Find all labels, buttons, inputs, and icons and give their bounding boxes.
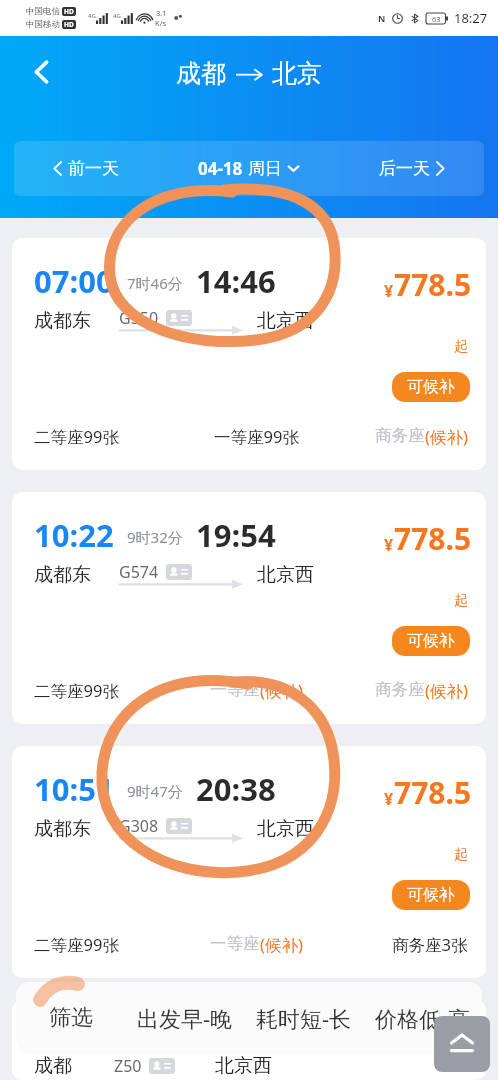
staticText: 9时47分 <box>127 781 183 801</box>
staticText: 成都东 <box>34 309 91 333</box>
staticText: ¥ <box>384 280 394 302</box>
staticText: 北京西 <box>257 817 314 841</box>
staticText: ¥ <box>384 788 394 810</box>
button[interactable]: 可候补 <box>392 626 470 656</box>
staticText: (候补) <box>425 679 468 702</box>
staticText: (候补) <box>260 679 303 702</box>
staticText: 3.1 <box>156 8 167 18</box>
staticText: 07:00 <box>34 260 114 302</box>
staticText: 商务座3张 <box>392 933 468 956</box>
staticText: G574 <box>119 561 159 583</box>
button[interactable]: 耗时短-长 <box>244 1003 363 1033</box>
staticText: 后一天 <box>379 158 430 179</box>
staticText: HD <box>64 20 74 29</box>
staticText: 中国电信 <box>26 6 60 17</box>
button[interactable]: 可候补 <box>392 880 470 910</box>
staticText: Z50 <box>114 1055 142 1077</box>
staticText: 北京西 <box>215 1054 272 1078</box>
staticText: K/s <box>155 18 167 28</box>
staticText: 19:54 <box>196 514 276 556</box>
staticText: 18:27 <box>454 9 488 27</box>
staticText: 778.5 <box>394 772 472 813</box>
staticText: 起 <box>454 592 468 610</box>
staticText: 可候补 <box>407 885 455 905</box>
staticText: 出发早-晚 <box>137 1003 233 1033</box>
staticText: 二等座99张 <box>34 425 119 448</box>
staticText: 起 <box>454 338 468 356</box>
staticText: 起 <box>454 846 468 864</box>
staticText: 04-18 <box>198 157 243 180</box>
staticText: 价格低-高 <box>375 1003 471 1033</box>
staticText: 可候补 <box>407 631 455 651</box>
staticText: 10:51 <box>34 768 114 810</box>
button[interactable]: 出发早-晚 <box>125 1003 244 1033</box>
staticText: (候补) <box>260 933 303 956</box>
staticText: 9时32分 <box>127 527 183 547</box>
button[interactable]: 成都 <box>12 1000 486 1080</box>
staticText: 成都 <box>34 1054 72 1078</box>
button[interactable]: 前一天 <box>14 158 158 179</box>
staticText: G308 <box>119 815 159 837</box>
staticText: ¥ <box>384 534 394 556</box>
staticText: 成都东 <box>34 563 91 587</box>
staticText: G350 <box>119 307 159 329</box>
staticText: 前一天 <box>68 158 119 179</box>
staticText: 778.5 <box>394 518 472 559</box>
staticText: 北京西 <box>257 309 314 333</box>
button[interactable]: Scroll to top <box>434 1016 490 1072</box>
button[interactable]: 可候补 <box>392 372 470 402</box>
button[interactable]: Back <box>14 44 70 100</box>
staticText: 10:22 <box>34 514 114 556</box>
staticText: 成都 <box>176 58 226 89</box>
button[interactable]: 07:00 <box>12 238 486 470</box>
staticText: 商务座 <box>375 425 425 446</box>
staticText: 4G <box>88 12 96 20</box>
button[interactable]: 10:51 <box>12 746 486 978</box>
staticText: 778.5 <box>394 264 472 305</box>
staticText: HD <box>64 7 74 16</box>
staticText: (候补) <box>425 425 468 448</box>
button[interactable]: 筛选 <box>16 1004 125 1032</box>
button[interactable]: 10:22 <box>12 492 486 724</box>
staticText: 二等座99张 <box>34 679 119 702</box>
staticText: N <box>378 12 386 24</box>
button[interactable]: 后一天 <box>339 158 484 179</box>
staticText: 63 <box>432 14 441 24</box>
staticText: 北京 <box>272 58 322 89</box>
staticText: 周日 <box>248 158 282 179</box>
staticText: 4G <box>113 12 121 20</box>
staticText: 成都东 <box>34 817 91 841</box>
button[interactable]: 04-18 <box>158 157 339 180</box>
staticText: 中国移动 <box>26 19 60 30</box>
button[interactable]: 价格低-高 <box>363 1003 482 1033</box>
staticText: 耗时短-长 <box>256 1003 352 1033</box>
staticText: 二等座99张 <box>34 933 119 956</box>
staticText: 14:46 <box>196 260 276 302</box>
staticText: 一等座 <box>210 933 260 954</box>
staticText: 可候补 <box>407 377 455 397</box>
staticText: 7时46分 <box>127 273 183 293</box>
staticText: 商务座 <box>375 679 425 700</box>
staticText: 北京西 <box>257 563 314 587</box>
staticText: 一等座99张 <box>214 425 299 448</box>
staticText: 一等座 <box>210 679 260 700</box>
staticText: 20:38 <box>196 768 276 810</box>
staticText: 筛选 <box>49 1004 93 1032</box>
